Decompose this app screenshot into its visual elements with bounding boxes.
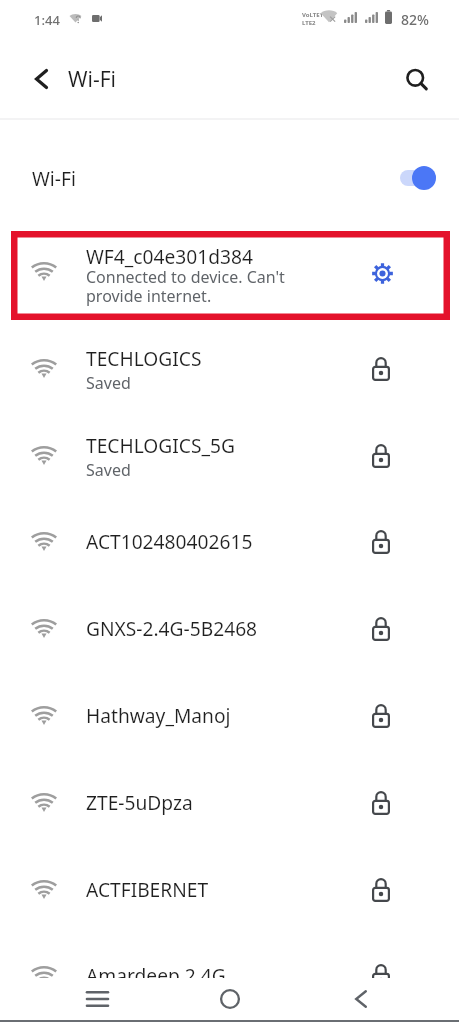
button[interactable]: Network settings — [348, 248, 416, 298]
staticText: TECHLOGICS — [86, 345, 202, 371]
staticText: Amardeep 2.4G — [86, 962, 226, 988]
staticText: TECHLOGICS_5G — [86, 432, 235, 458]
staticText: 82% — [401, 10, 429, 29]
button[interactable]: Amardeep 2.4G — [0, 932, 459, 1019]
button[interactable]: ZTE-5uDpza — [0, 759, 459, 846]
staticText: Wi-Fi — [68, 65, 117, 94]
button[interactable]: Wi-Fi on — [400, 166, 436, 190]
button[interactable]: GNXS-2.4G-5B2468 — [0, 585, 459, 672]
staticText: Saved — [86, 372, 131, 394]
button[interactable]: ACT102480402615 — [0, 498, 459, 585]
button[interactable]: Home — [204, 978, 256, 1020]
staticText: ACTFIBERNET — [86, 876, 209, 902]
button[interactable]: Hathway_Manoj — [0, 672, 459, 759]
button[interactable]: TECHLOGICS — [0, 325, 459, 412]
button[interactable] — [0, 227, 459, 324]
staticText: WF4_c04e301d384 — [86, 243, 253, 269]
button[interactable]: Recent apps — [71, 978, 123, 1020]
staticText: Wi-Fi — [32, 165, 76, 191]
staticText: Saved — [86, 459, 131, 481]
staticText: ACT102480402615 — [86, 528, 253, 554]
staticText: 1:44 — [34, 11, 60, 29]
button[interactable]: Navigate up — [23, 62, 59, 96]
staticText: ZTE-5uDpza — [86, 789, 193, 815]
staticText: Connected to device. Can't provide inter… — [86, 266, 285, 307]
button[interactable]: Search — [398, 61, 436, 99]
staticText: VoLTE1 — [302, 11, 324, 19]
button[interactable]: Back — [335, 978, 387, 1020]
button[interactable]: TECHLOGICS_5G — [0, 412, 459, 499]
staticText: Hathway_Manoj — [86, 702, 231, 728]
button[interactable]: Wi-Fi — [0, 113, 459, 227]
button[interactable]: ACTFIBERNET — [0, 846, 459, 933]
staticText: GNXS-2.4G-5B2468 — [86, 615, 258, 641]
staticText: LTE2 — [302, 19, 316, 27]
